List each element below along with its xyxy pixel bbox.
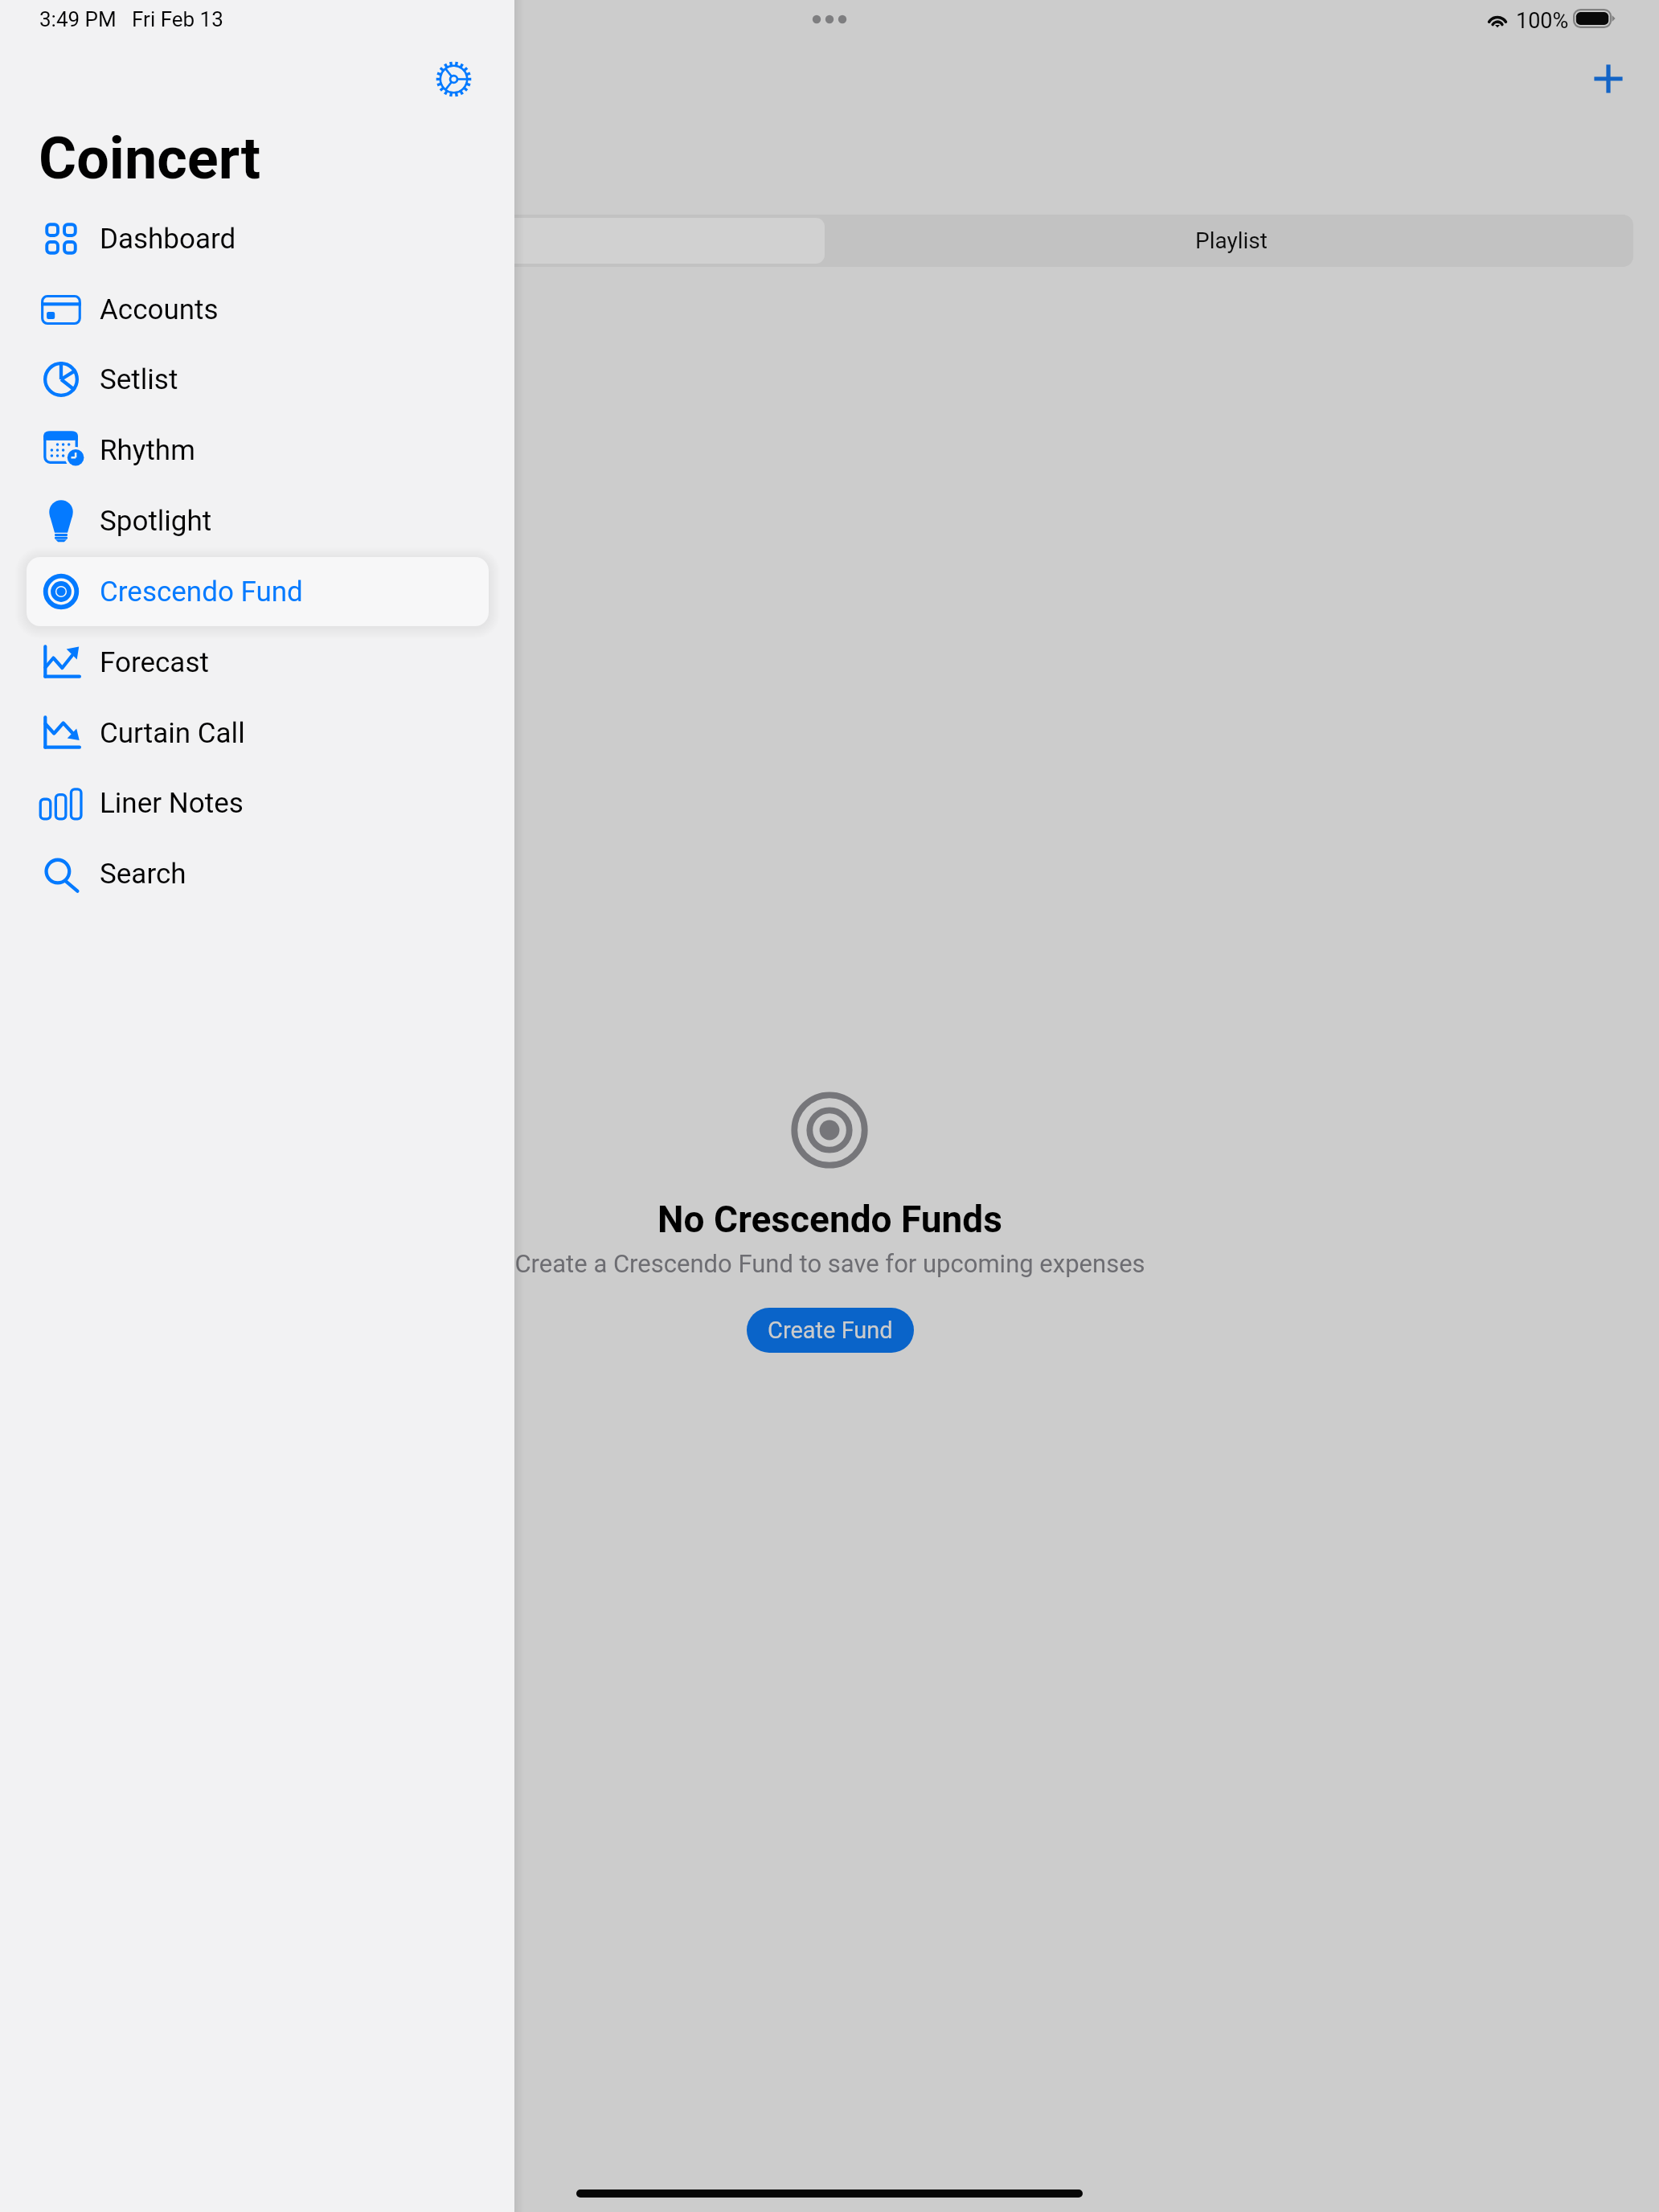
button[interactable]: Create Fund: [747, 1308, 914, 1353]
button[interactable]: Funds: [28, 218, 825, 264]
staticText: Create Fund: [768, 1317, 893, 1344]
button[interactable]: Add: [1576, 47, 1641, 111]
button[interactable]: Search: [27, 839, 489, 908]
staticText: Create a Crescendo Fund to save for upco…: [514, 1249, 1145, 1278]
staticText: Search: [100, 858, 186, 891]
staticText: Dashboard: [100, 223, 236, 256]
staticText: Forecast: [100, 646, 209, 679]
button[interactable]: Playlist: [829, 215, 1633, 267]
button[interactable]: Forecast: [27, 628, 489, 697]
staticText: No Crescendo Funds: [657, 1198, 1002, 1241]
button[interactable]: Accounts: [27, 275, 489, 344]
button[interactable]: Setlist: [27, 345, 489, 414]
staticText: Coincert: [39, 125, 261, 192]
staticText: Curtain Call: [100, 717, 245, 750]
staticText: Rhythm: [100, 434, 195, 467]
staticText: Accounts: [100, 293, 219, 326]
button[interactable]: Spotlight: [27, 486, 489, 555]
button[interactable]: Curtain Call: [27, 698, 489, 768]
staticText: 100%: [1516, 8, 1569, 34]
staticText: 3:49 PM Fri Feb 13: [39, 7, 223, 31]
staticText: Setlist: [100, 363, 178, 396]
staticText: Crescendo Fund: [100, 576, 303, 608]
staticText: Spotlight: [100, 505, 212, 538]
button[interactable]: Dashboard: [27, 204, 489, 273]
staticText: Playlist: [1195, 227, 1268, 254]
button[interactable]: Liner Notes: [27, 768, 489, 838]
button[interactable]: Crescendo Fund: [27, 557, 489, 626]
button[interactable]: Settings: [421, 47, 485, 111]
staticText: Liner Notes: [100, 787, 244, 820]
button[interactable]: Rhythm: [27, 416, 489, 485]
